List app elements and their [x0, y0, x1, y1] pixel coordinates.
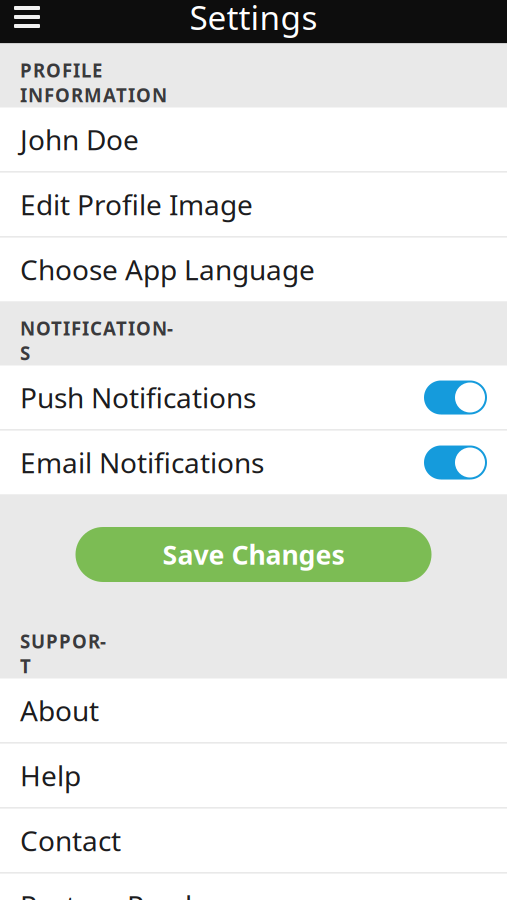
button[interactable]: Contact — [0, 808, 507, 872]
staticText: About — [20, 692, 99, 729]
button[interactable]: John Doe — [0, 107, 507, 171]
staticText: Choose App Language — [20, 251, 315, 288]
button[interactable]: Email Notifications — [0, 430, 507, 494]
button[interactable]: Save Changes — [75, 527, 431, 582]
staticText: Contact — [20, 822, 121, 859]
button[interactable]: About — [0, 678, 507, 742]
staticText: Settings — [189, 0, 317, 39]
button[interactable]: Push Notifications — [0, 365, 507, 429]
button[interactable]: Restore Purchases — [0, 873, 507, 900]
staticText: Push Notifications — [20, 379, 256, 416]
staticText: SUPPORT — [20, 629, 106, 678]
button[interactable]: Choose App Language — [0, 237, 507, 301]
button[interactable]: Edit Profile Image — [0, 172, 507, 236]
staticText: Save Changes — [162, 537, 344, 572]
staticText: Email Notifications — [20, 444, 264, 481]
button[interactable]: Menu — [0, 0, 54, 43]
staticText: Help — [20, 757, 81, 794]
staticText: PROFILE INFORMATION — [20, 58, 167, 107]
staticText: Edit Profile Image — [20, 186, 253, 223]
staticText: Restore Purchases — [20, 887, 260, 900]
staticText: John Doe — [20, 121, 139, 158]
button[interactable]: Help — [0, 743, 507, 807]
staticText: NOTIFICATIONS — [20, 316, 173, 365]
